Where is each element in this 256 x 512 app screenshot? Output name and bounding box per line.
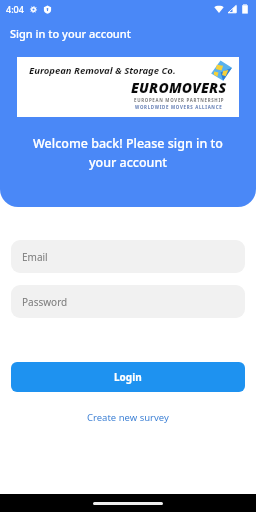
staticText: Email: [22, 250, 48, 264]
staticText: Sign in to your account: [10, 26, 131, 41]
staticText: EUROMOVERS: [131, 78, 227, 97]
button[interactable]: Email: [11, 240, 245, 273]
staticText: Welcome back! Please sign in to your acc…: [20, 135, 236, 171]
button[interactable]: Login: [11, 362, 245, 392]
button[interactable]: Password: [11, 285, 245, 318]
staticText: European Removal & Storage Co.: [29, 64, 176, 77]
staticText: Create new survey: [87, 411, 169, 424]
button[interactable]: Create new survey: [81, 408, 175, 427]
staticText: WORLDWIDE MOVERS ALLIANCE: [135, 104, 223, 110]
staticText: 4:04: [6, 3, 24, 15]
staticText: Login: [114, 370, 142, 384]
staticText: Password: [22, 295, 68, 309]
staticText: EUROPEAN MOVER PARTNERSHIP: [134, 97, 225, 103]
